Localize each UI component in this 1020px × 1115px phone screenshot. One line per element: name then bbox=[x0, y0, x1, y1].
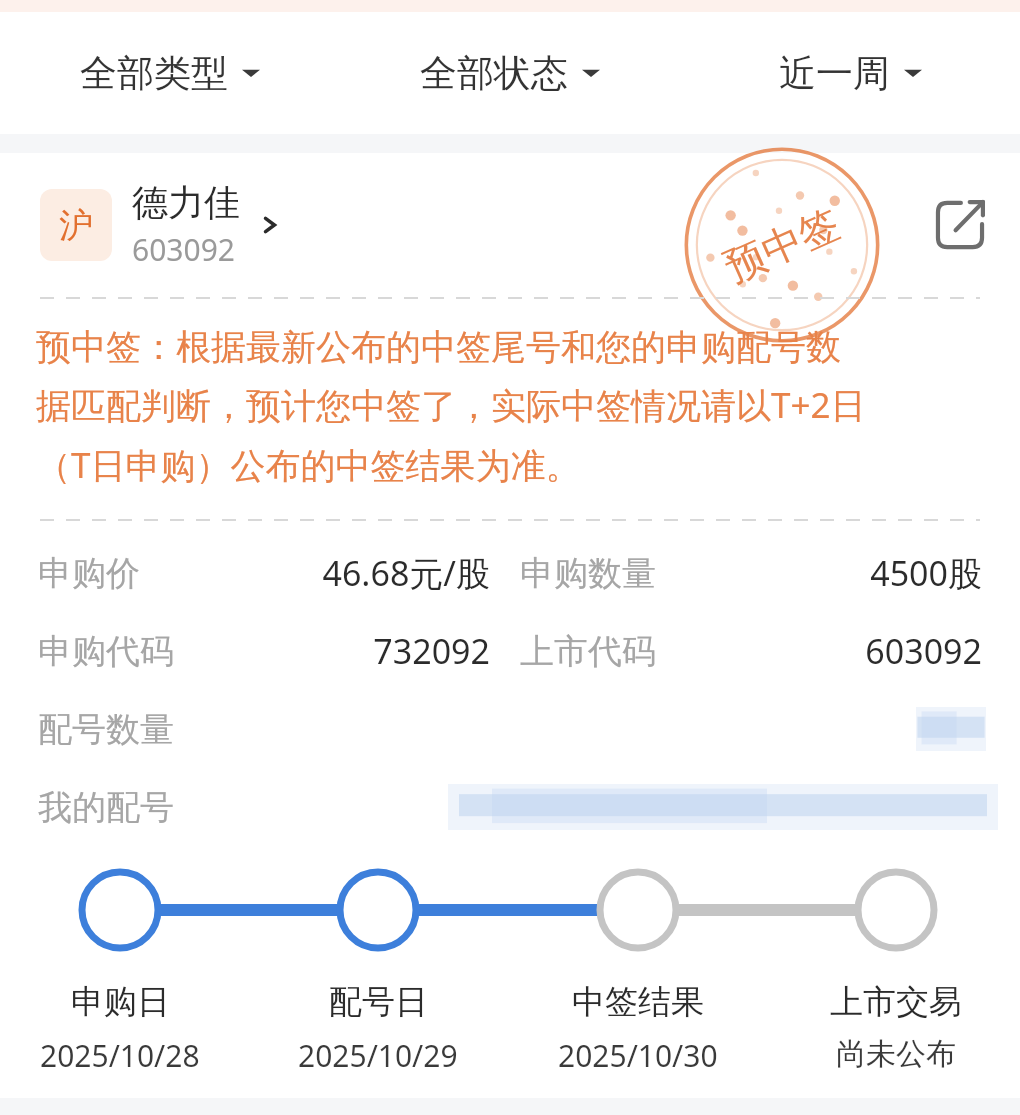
staticText: 申购日 bbox=[71, 981, 170, 1023]
staticText: 上市交易 bbox=[830, 981, 962, 1023]
staticText: 2025/10/28 bbox=[40, 1035, 200, 1076]
staticText: 尚未公布 bbox=[836, 1035, 956, 1073]
staticText: 配号日 bbox=[329, 981, 428, 1023]
staticText: 4500股 bbox=[682, 550, 982, 596]
staticText: 2025/10/29 bbox=[298, 1035, 458, 1076]
staticText: 申购价 bbox=[38, 552, 140, 595]
staticText: 沪 bbox=[59, 204, 93, 247]
button[interactable]: 沪 bbox=[0, 175, 1020, 275]
staticText: 德力佳 bbox=[132, 180, 240, 225]
staticText: 46.68元/股 bbox=[200, 550, 490, 596]
staticText: 预中签 bbox=[717, 198, 847, 292]
button[interactable]: Open in new bbox=[928, 193, 992, 257]
staticText: 中签结果 bbox=[572, 981, 704, 1023]
staticText: 603092 bbox=[682, 628, 982, 674]
staticText: 预中签：根据最新公布的中签尾号和您的申购配号数 bbox=[36, 325, 841, 369]
staticText: 申购数量 bbox=[520, 552, 656, 595]
staticText: 据匹配判断，预计您中签了，实际中签情况请以T+2日 bbox=[36, 381, 866, 429]
button[interactable]: 全部类型 bbox=[0, 12, 340, 134]
staticText: 上市代码 bbox=[520, 630, 656, 673]
button[interactable]: 近一周 bbox=[680, 12, 1020, 134]
staticText: 我的配号 bbox=[38, 786, 174, 829]
staticText: 配号数量 bbox=[38, 708, 174, 751]
staticText: 603092 bbox=[132, 229, 235, 270]
staticText: 732092 bbox=[200, 628, 490, 674]
staticText: 申购代码 bbox=[38, 630, 174, 673]
staticText: 全部类型 bbox=[80, 50, 228, 97]
staticText: 近一周 bbox=[779, 50, 890, 97]
button[interactable]: 全部状态 bbox=[340, 12, 680, 134]
staticText: 2025/10/30 bbox=[558, 1035, 718, 1076]
staticText: 全部状态 bbox=[420, 50, 568, 97]
staticText: （T日申购）公布的中签结果为准。 bbox=[36, 441, 581, 489]
